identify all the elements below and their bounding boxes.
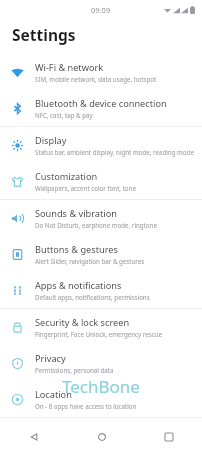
staticText: Apps & notifications — [35, 279, 122, 292]
staticText: Settings — [12, 24, 76, 45]
button[interactable]: Buttons & gestures — [0, 236, 202, 272]
staticText: Display — [35, 134, 67, 147]
button[interactable]: Back — [0, 424, 68, 450]
staticText: 09:09 — [91, 5, 111, 15]
staticText: Location — [35, 388, 72, 401]
staticText: SIM, mobile network, data usage, hotspot — [35, 75, 157, 83]
staticText: Status bar, ambient display, night mode,… — [35, 148, 194, 156]
staticText: Customization — [35, 170, 98, 183]
button[interactable]: Customization — [0, 163, 202, 199]
staticText: Privacy — [35, 352, 66, 365]
button[interactable]: Location — [0, 381, 202, 417]
button[interactable]: Display — [0, 127, 202, 163]
staticText: TechBone — [62, 375, 140, 398]
staticText: Fingerprint, Face Unlock, emergency resc… — [35, 330, 163, 338]
staticText: Alert Slider, navigation bar & gestures — [35, 257, 145, 265]
button[interactable]: Apps & notifications — [0, 272, 202, 308]
button[interactable]: Privacy — [0, 345, 202, 381]
staticText: Battery — [35, 425, 67, 438]
staticText: Wi-Fi & network — [35, 61, 104, 74]
staticText: Sounds & vibration — [35, 207, 117, 220]
staticText: Bluetooth & device connection — [35, 97, 167, 110]
button[interactable]: Bluetooth & device connection — [0, 90, 202, 126]
button[interactable]: Sounds & vibration — [0, 200, 202, 236]
button[interactable]: Home — [68, 424, 135, 450]
staticText: Permissions, personal data — [35, 366, 114, 374]
staticText: Default apps, notifications, permissions — [35, 293, 150, 301]
staticText: On - 8 apps have access to location — [35, 402, 137, 410]
staticText: 100% - about 1 day left — [35, 439, 102, 443]
button[interactable]: Security & lock screen — [0, 309, 202, 345]
staticText: Wallpapers, accent color font, tone — [35, 184, 136, 192]
button[interactable]: Battery — [0, 418, 202, 450]
button[interactable]: Recent apps — [135, 424, 202, 450]
staticText: Do Not Disturb, earphone mode, ringtone — [35, 221, 157, 229]
button[interactable]: Wi-Fi & network — [0, 54, 202, 90]
staticText: Security & lock screen — [35, 316, 130, 329]
staticText: NFC, cast, tap & pay — [35, 111, 93, 119]
staticText: Buttons & gestures — [35, 243, 118, 256]
